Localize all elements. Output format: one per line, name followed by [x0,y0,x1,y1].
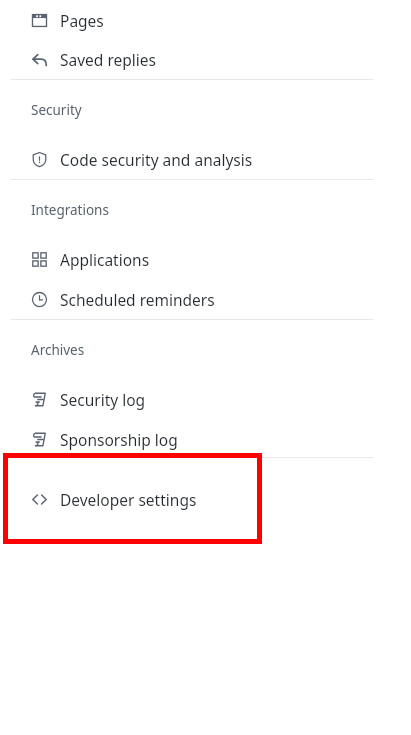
staticText: Developer settings [60,489,197,510]
button[interactable]: Security log [0,379,411,419]
button[interactable]: Applications [0,239,411,279]
staticText: Security log [60,389,146,410]
button[interactable]: Pages [0,0,411,40]
staticText: Pages [60,10,104,31]
button[interactable]: Sponsorship log [0,419,411,459]
staticText: Code security and analysis [60,149,253,170]
staticText: Saved replies [60,49,156,70]
staticText: Scheduled reminders [60,289,215,310]
staticText: Applications [60,249,150,270]
button[interactable]: Code security and analysis [0,139,411,179]
button[interactable]: Developer settings [0,479,411,519]
button[interactable]: Saved replies [0,39,411,79]
staticText: Archives [31,341,85,359]
button[interactable]: Scheduled reminders [0,279,411,319]
staticText: Sponsorship log [60,429,178,450]
staticText: Integrations [31,201,109,219]
staticText: Security [31,101,82,119]
